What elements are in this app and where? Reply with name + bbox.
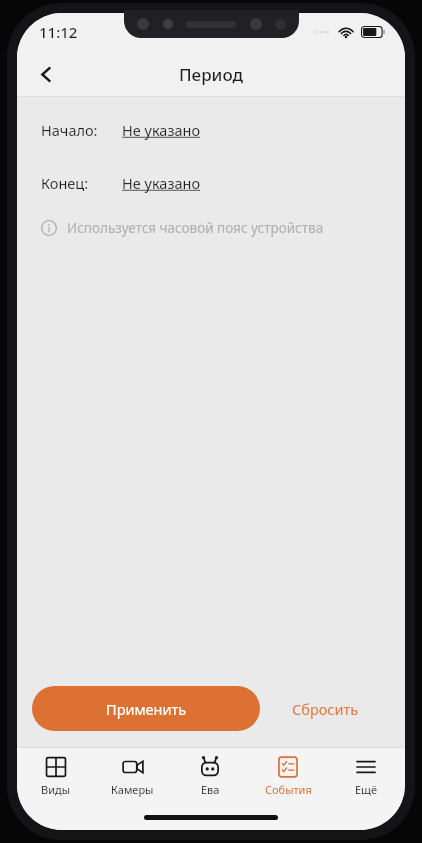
staticText: Виды [41, 782, 71, 797]
staticText: 11:12 [39, 22, 78, 42]
button[interactable]: Ещё [327, 748, 405, 804]
button[interactable]: Ева [171, 748, 249, 804]
staticText: Начало: [41, 120, 98, 140]
button[interactable]: Применить [32, 686, 260, 731]
button[interactable]: Виды [17, 748, 94, 804]
button[interactable]: Не указано [120, 114, 203, 146]
staticText: Ещё [355, 782, 378, 797]
staticText: Сбросить [292, 699, 359, 719]
button[interactable]: События [249, 748, 327, 804]
button[interactable]: Не указано [120, 167, 203, 199]
staticText: Не указано [122, 173, 201, 193]
staticText: Конец: [41, 173, 89, 193]
staticText: Не указано [122, 120, 201, 140]
staticText: Используется часовой пояс устройства [67, 219, 324, 237]
staticText: Применить [106, 699, 187, 719]
button[interactable]: Назад [23, 51, 69, 97]
staticText: Камеры [111, 782, 154, 797]
button[interactable]: Сбросить [260, 686, 390, 731]
staticText: Период [179, 63, 243, 86]
staticText: События [265, 782, 312, 797]
button[interactable]: Камеры [94, 748, 171, 804]
staticText: Ева [201, 782, 220, 797]
